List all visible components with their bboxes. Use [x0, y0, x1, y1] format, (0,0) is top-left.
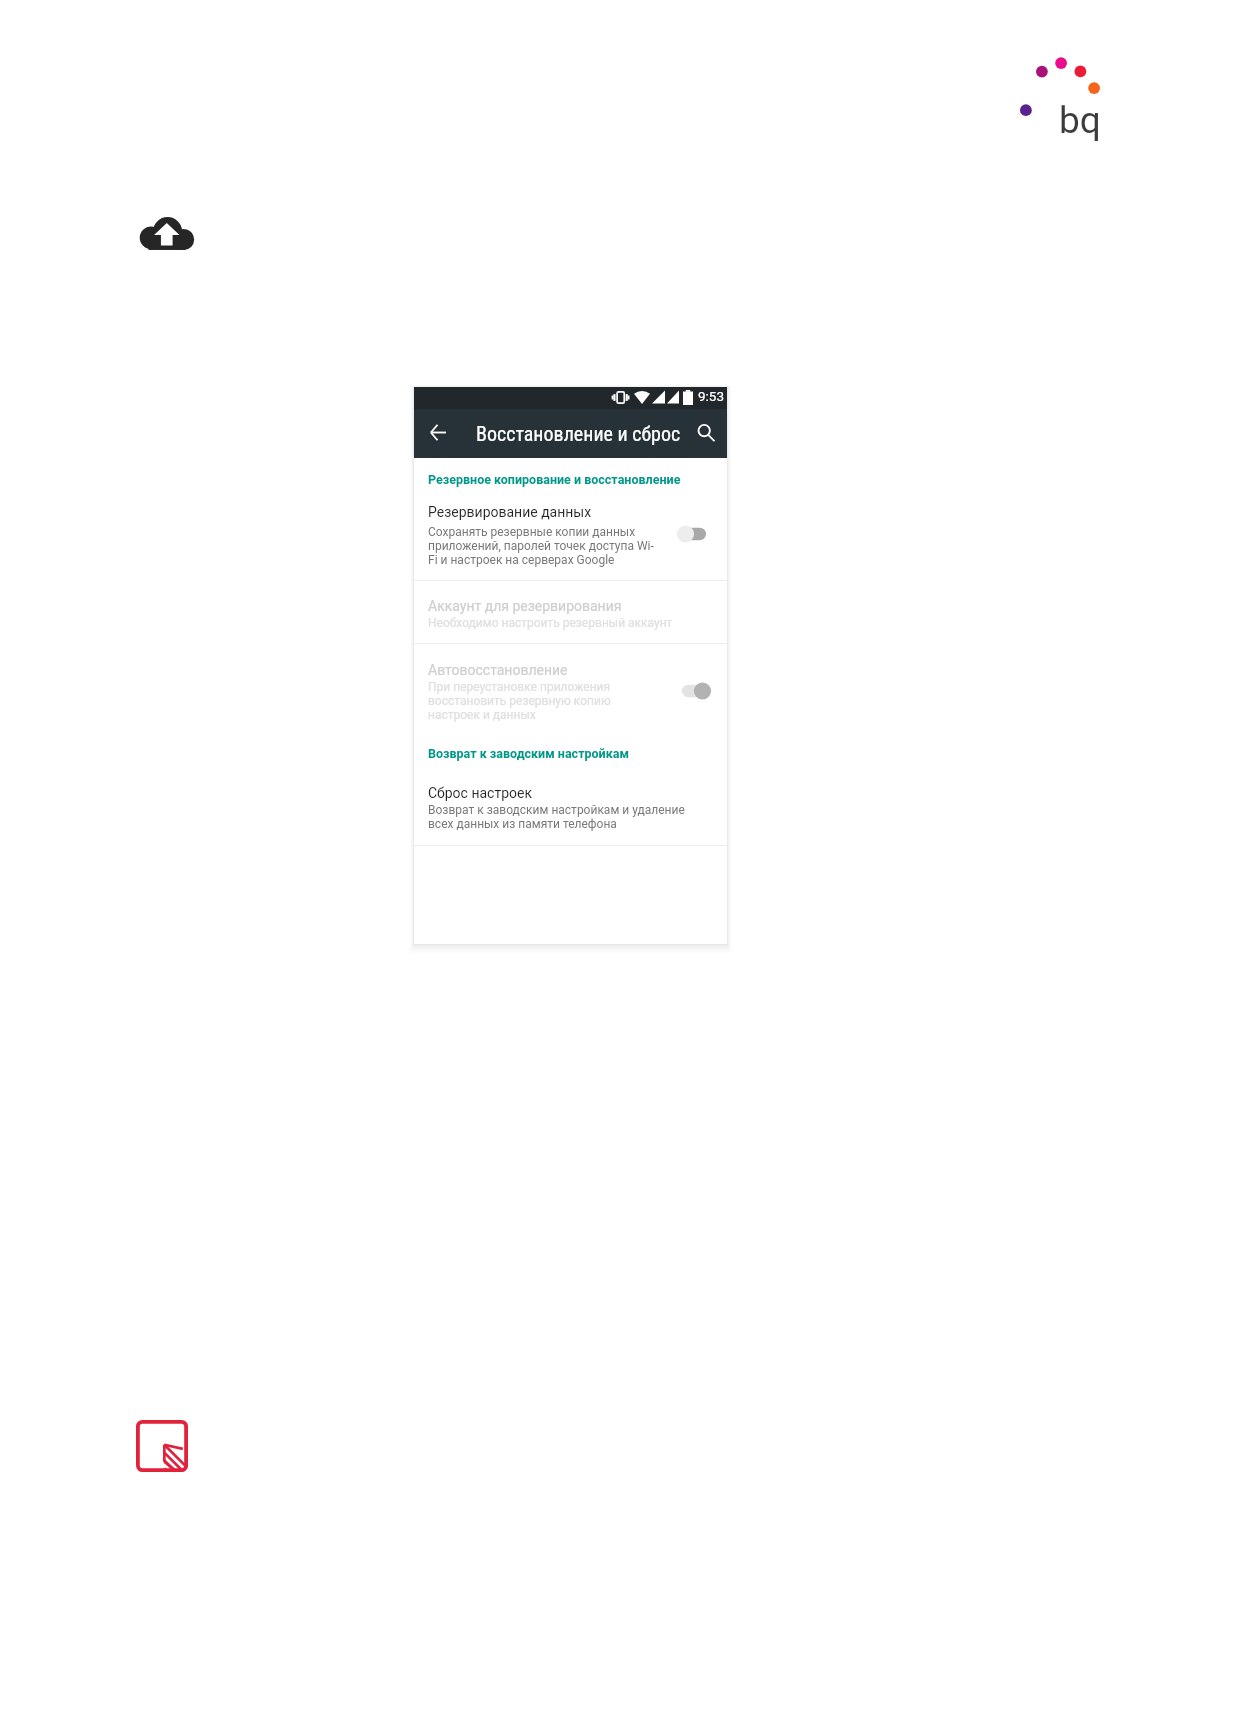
button[interactable]: Аккаунт для резервирования: [414, 581, 727, 643]
staticText: Резервное копирование и восстановление: [428, 472, 681, 487]
button[interactable]: Backup to cloud: [140, 215, 193, 253]
button[interactable]: Edit: [136, 1420, 188, 1472]
button[interactable]: Автовосстановление: [414, 644, 727, 723]
staticText: Восстановление и сброс: [476, 422, 681, 445]
staticText: Сохранять резервные копии данных приложе…: [428, 525, 654, 567]
staticText: bq: [1059, 99, 1101, 142]
button[interactable]: Резервирование данных: [414, 493, 727, 580]
button[interactable]: Switch off: [665, 515, 705, 553]
staticText: При переустановке приложения восстановит…: [428, 680, 611, 722]
staticText: Необходимо настроить резервный аккаунт: [428, 616, 673, 630]
button[interactable]: Сброс настроек: [414, 767, 727, 845]
button[interactable]: Back: [419, 413, 459, 453]
staticText: Автовосстановление: [428, 662, 568, 678]
button[interactable]: Switch on: [664, 672, 704, 710]
staticText: Возврат к заводским настройкам: [428, 746, 629, 761]
staticText: Сброс настроек: [428, 785, 532, 801]
staticText: 9:53: [698, 388, 725, 404]
staticText: Резервирование данных: [428, 504, 592, 520]
staticText: Аккаунт для резервирования: [428, 598, 622, 614]
staticText: Возврат к заводским настройкам и удалени…: [428, 803, 685, 831]
button[interactable]: Search: [685, 413, 725, 453]
